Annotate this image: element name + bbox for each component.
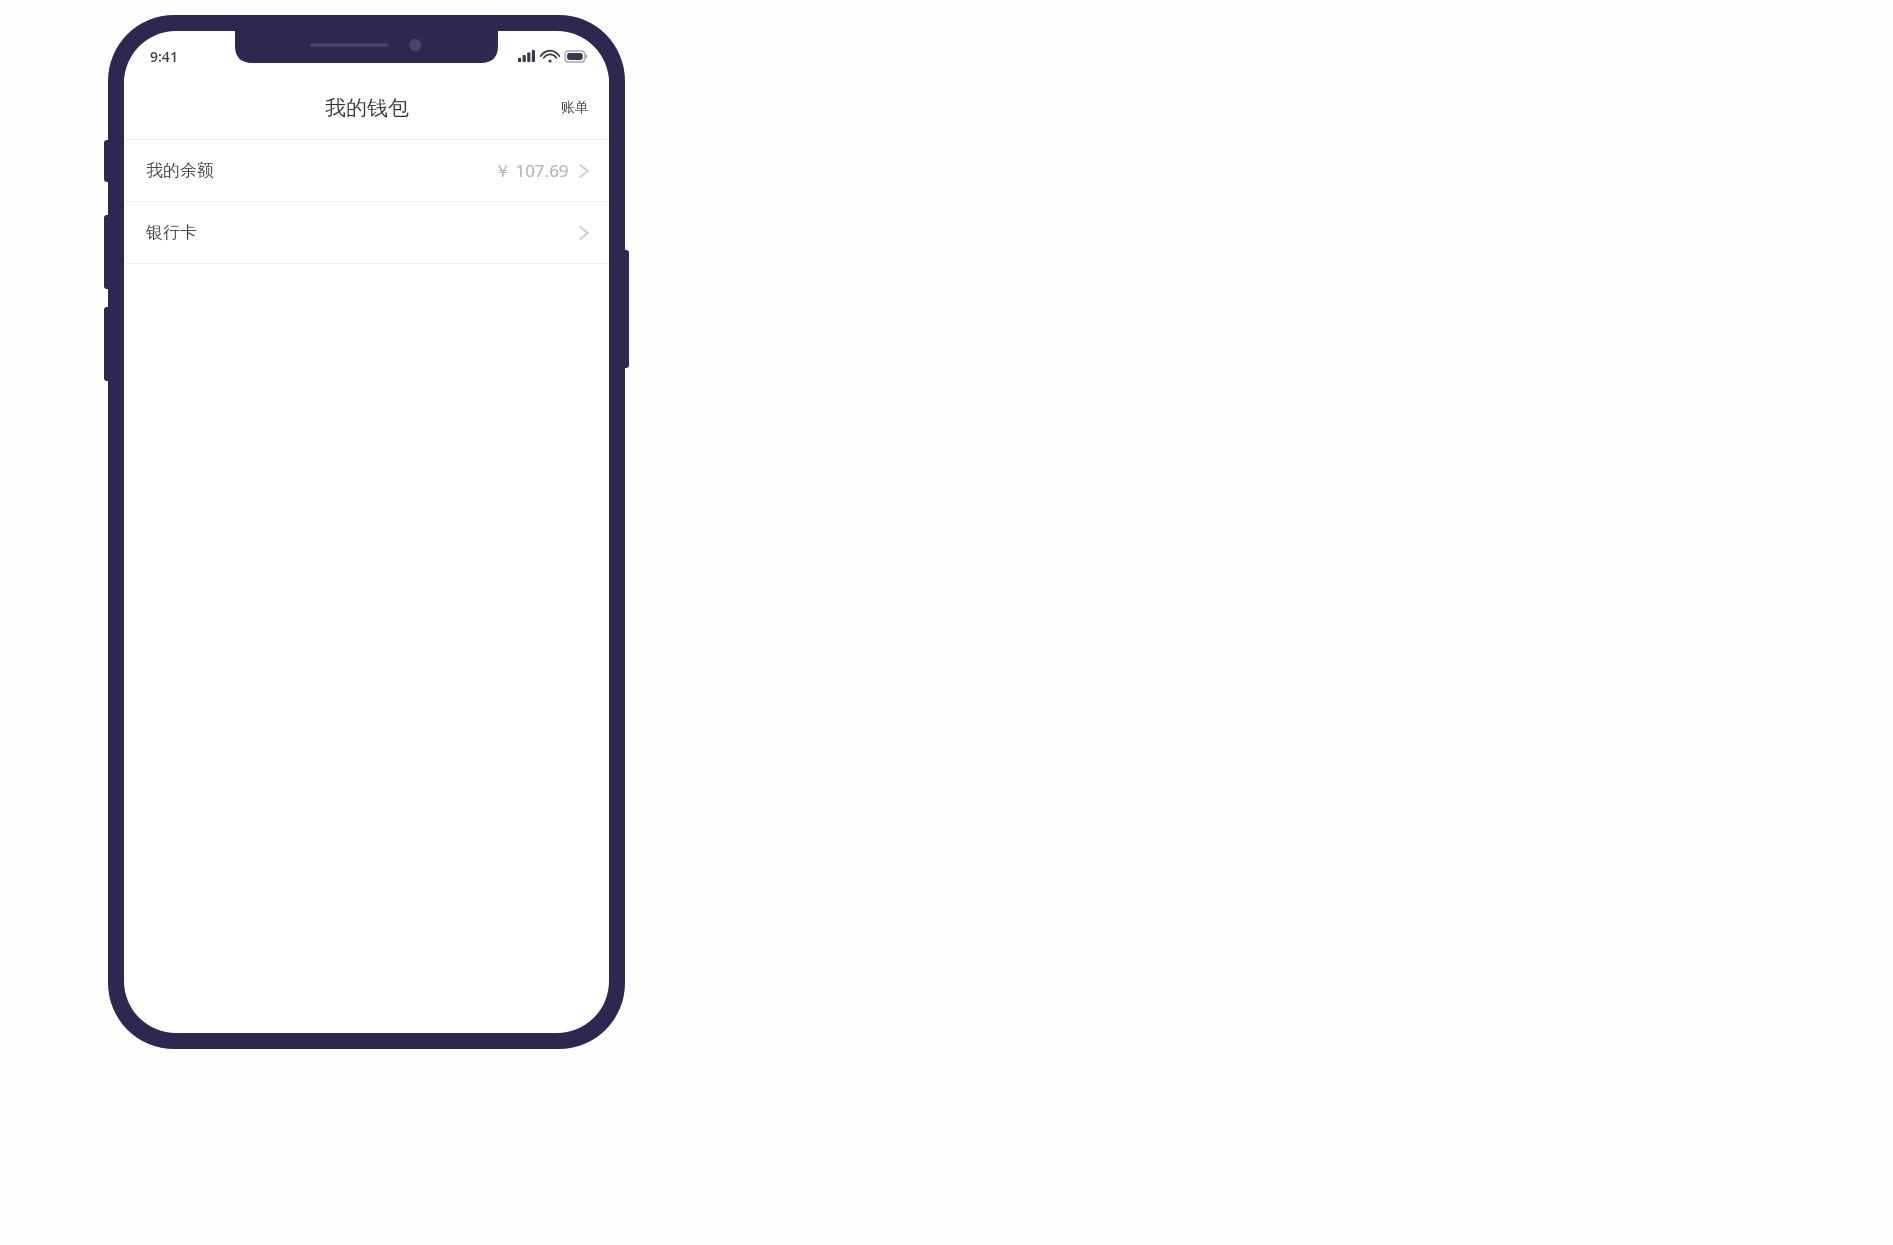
button[interactable]: 我的余额 [124, 140, 609, 201]
button[interactable]: 银行卡 [124, 202, 609, 263]
button[interactable]: 账单 [541, 87, 609, 129]
staticText: 账单 [561, 99, 589, 117]
staticText: 我的余额 [146, 160, 214, 181]
staticText: 9:41 [150, 47, 178, 66]
staticText: 我的钱包 [325, 95, 409, 121]
other: Open [577, 160, 591, 182]
other: Open [577, 222, 591, 244]
staticText: 银行卡 [146, 222, 197, 243]
staticText: ￥ 107.69 [494, 159, 569, 182]
